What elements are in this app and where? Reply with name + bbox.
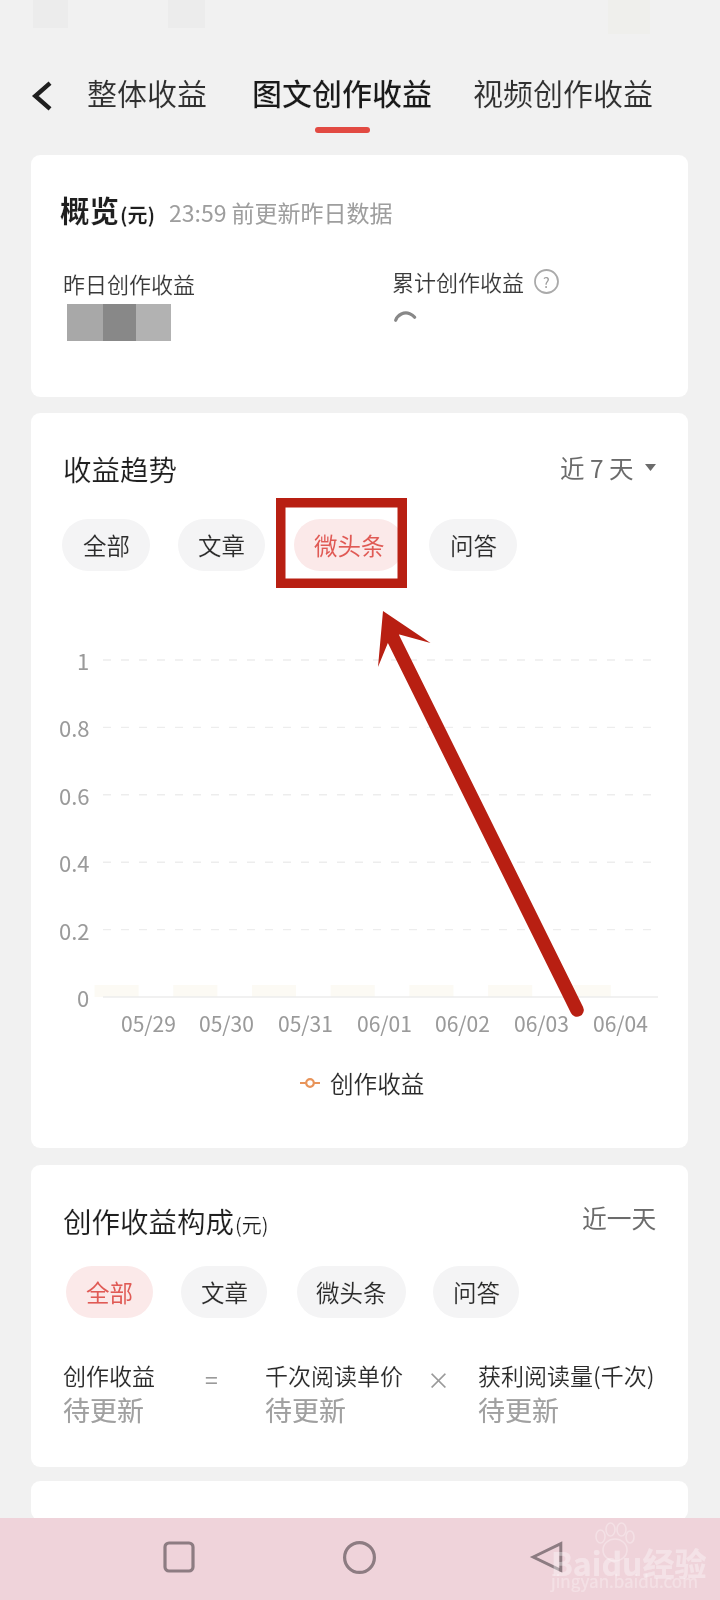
- button[interactable]: 文章: [181, 1266, 267, 1318]
- staticText: 千次阅读单价: [265, 1358, 403, 1391]
- staticText: 0.6: [59, 779, 90, 811]
- button[interactable]: Back: [17, 70, 69, 122]
- staticText: (元): [235, 1210, 269, 1239]
- staticText: 06/04: [593, 1008, 648, 1038]
- staticText: 文章: [198, 528, 245, 562]
- staticText: 全部: [86, 1275, 133, 1309]
- staticText: 06/01: [357, 1008, 412, 1038]
- staticText: 创作收益: [330, 1066, 425, 1100]
- staticText: 整体收益: [87, 70, 207, 113]
- staticText: 收益趋势: [63, 448, 178, 489]
- staticText: 昨日创作收益: [63, 267, 196, 299]
- staticText: 创作收益构成: [63, 1200, 235, 1241]
- button[interactable]: 微头条: [294, 519, 404, 571]
- staticText: 0.8: [59, 711, 90, 743]
- staticText: jingyan.baidu.com: [551, 1568, 698, 1593]
- staticText: ?: [543, 272, 550, 292]
- button[interactable]: 文章: [178, 519, 265, 571]
- button[interactable]: 近 7 天: [560, 450, 656, 485]
- staticText: 获利阅读量(千次): [478, 1358, 655, 1391]
- button[interactable]: 整体收益: [87, 70, 207, 113]
- staticText: 05/31: [278, 1008, 333, 1038]
- staticText: 待更新: [63, 1390, 144, 1429]
- staticText: 概览: [60, 188, 120, 231]
- staticText: 近 7 天: [560, 450, 634, 485]
- staticText: (元): [120, 200, 156, 229]
- button[interactable]: 图文创作收益: [252, 70, 432, 133]
- staticText: 视频创作收益: [473, 70, 653, 113]
- button[interactable]: 视频创作收益: [473, 70, 653, 113]
- button[interactable]: Recent apps: [151, 1529, 207, 1585]
- staticText: 创作收益: [63, 1358, 155, 1391]
- staticText: 图文创作收益: [252, 70, 432, 113]
- button[interactable]: Back: [519, 1529, 575, 1585]
- staticText: 问答: [450, 528, 497, 562]
- button[interactable]: Home: [331, 1529, 387, 1585]
- staticText: 待更新: [265, 1390, 346, 1429]
- staticText: 1: [77, 644, 90, 676]
- button[interactable]: 问答: [429, 519, 517, 571]
- staticText: 06/02: [435, 1008, 490, 1038]
- staticText: 微头条: [314, 528, 385, 562]
- button[interactable]: 全部: [66, 1266, 153, 1318]
- staticText: 问答: [453, 1275, 500, 1309]
- staticText: =: [205, 1362, 218, 1395]
- staticText: 05/29: [121, 1008, 176, 1038]
- button[interactable]: 问答: [433, 1266, 519, 1318]
- staticText: 文章: [201, 1275, 248, 1309]
- staticText: 0: [77, 981, 90, 1013]
- button[interactable]: 全部: [62, 519, 150, 571]
- staticText: ×: [427, 1362, 450, 1395]
- staticText: 05/30: [199, 1008, 254, 1038]
- staticText: 累计创作收益: [392, 265, 525, 297]
- staticText: 06/03: [514, 1008, 569, 1038]
- staticText: 23:59 前更新昨日数据: [169, 195, 393, 228]
- staticText: Baidu经验: [551, 1539, 707, 1585]
- staticText: 0.2: [59, 914, 90, 946]
- staticText: 全部: [83, 528, 130, 562]
- button[interactable]: 微头条: [297, 1266, 406, 1318]
- staticText: 微头条: [316, 1275, 387, 1309]
- staticText: 0.4: [59, 846, 90, 878]
- staticText: 待更新: [478, 1390, 559, 1429]
